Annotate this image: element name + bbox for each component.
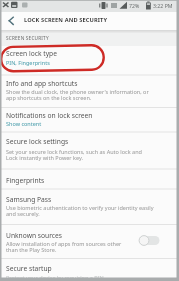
button[interactable] <box>135 232 163 249</box>
staticText: Screen lock type <box>6 49 57 58</box>
button[interactable]: Fingerprints <box>0 169 177 189</box>
staticText: Lock instantly with Power key. <box>6 154 83 161</box>
staticText: Secure startup <box>6 264 52 273</box>
staticText: PIN, Fingerprints <box>6 59 50 66</box>
staticText: 3:22 PM <box>153 2 173 9</box>
staticText: LOCK SCREEN AND SECURITY <box>24 16 108 24</box>
staticText: Secure lock settings <box>6 137 69 146</box>
staticText: app shortcuts on the lock screen. <box>6 94 92 101</box>
staticText: and securely. <box>6 210 40 217</box>
staticText: Show content <box>6 120 42 127</box>
staticText: Protect your device by requiring a PIN <box>6 274 104 281</box>
staticText: Fingerprints <box>6 176 45 185</box>
staticText: Notifications on lock screen <box>6 111 93 120</box>
button[interactable]: Unknown sources <box>0 224 177 258</box>
staticText: Info and app shortcuts <box>6 79 78 88</box>
staticText: Use biometric authentication to verify y… <box>6 204 154 211</box>
button[interactable]: Secure startup <box>0 258 177 278</box>
staticText: than the Play Store. <box>6 246 57 253</box>
button[interactable]: Notifications on lock screen <box>0 107 177 132</box>
button[interactable]: Info and app shortcuts <box>0 75 177 108</box>
button[interactable]: Samsung Pass <box>0 189 177 225</box>
button[interactable]: Screen lock type <box>0 46 177 75</box>
staticText: Show the dual clock, the phone owner's i… <box>6 88 149 95</box>
staticText: Set your secure lock functions, such as … <box>6 148 142 155</box>
staticText: Allow installation of apps from sources … <box>6 240 122 247</box>
button[interactable] <box>2 13 22 30</box>
staticText: 72% <box>129 2 140 9</box>
staticText: Unknown sources <box>6 231 62 240</box>
staticText: Samsung Pass <box>6 195 52 204</box>
staticText: SCREEN SECURITY <box>6 35 49 41</box>
button[interactable]: Secure lock settings <box>0 132 177 169</box>
